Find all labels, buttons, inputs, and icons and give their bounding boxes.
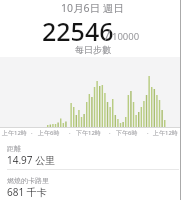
staticText: · <box>31 129 33 137</box>
button[interactable] <box>0 57 181 128</box>
staticText: 14.97 公里 <box>7 153 56 167</box>
staticText: 下午6時 <box>116 129 138 137</box>
staticText: 下午12時 <box>76 129 101 137</box>
staticText: 上午12時 <box>2 129 27 137</box>
staticText: · <box>69 129 71 137</box>
staticText: 每日步數 <box>75 44 111 55</box>
staticText: 上午12時 <box>153 129 178 137</box>
staticText: 燃燒的卡路里 <box>7 176 49 185</box>
staticText: 10月6日 週日 <box>61 1 124 15</box>
button[interactable]: 燃燒的卡路里 <box>0 173 181 200</box>
staticText: · <box>147 129 149 137</box>
staticText: 10000 <box>112 30 140 43</box>
staticText: 距離 <box>7 144 21 153</box>
staticText: 22546 <box>42 14 114 48</box>
staticText: 上午6時 <box>38 129 60 137</box>
button[interactable]: 距離 <box>0 141 181 168</box>
staticText: 681 千卡 <box>7 185 47 199</box>
staticText: · <box>109 129 111 137</box>
